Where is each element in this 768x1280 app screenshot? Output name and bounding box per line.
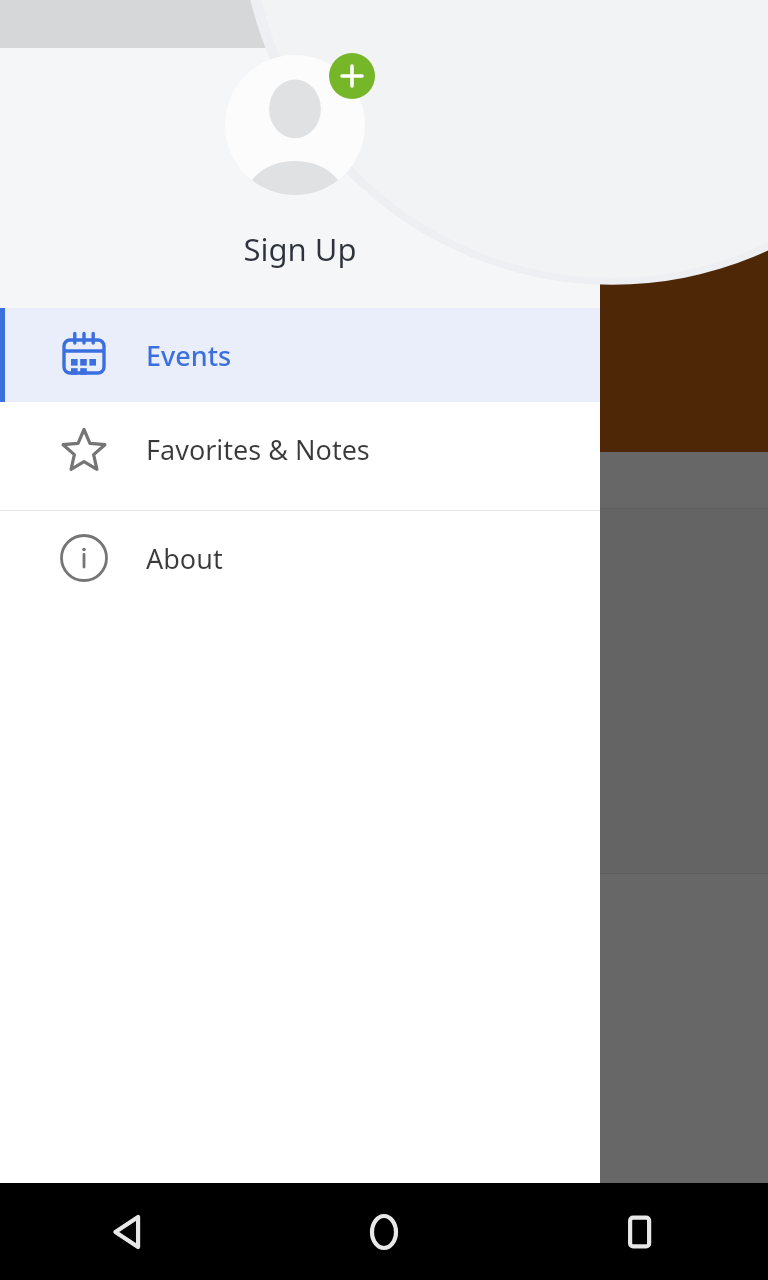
button[interactable]: Events <box>0 308 600 402</box>
staticText: About <box>146 540 223 577</box>
button[interactable]: Back <box>0 1183 256 1280</box>
staticText: Sign Up <box>243 228 357 270</box>
staticText: Favorites & Notes <box>146 431 370 468</box>
button[interactable]: Home <box>256 1183 512 1280</box>
button[interactable]: Add account <box>329 53 375 99</box>
button[interactable]: Powered by <box>0 1238 600 1280</box>
button[interactable]: Recents <box>512 1183 768 1280</box>
button[interactable]: Favorites & Notes <box>0 402 600 497</box>
button[interactable]: About <box>0 511 600 605</box>
button[interactable]: Sign Up <box>225 55 365 195</box>
staticText: Events <box>146 337 232 374</box>
